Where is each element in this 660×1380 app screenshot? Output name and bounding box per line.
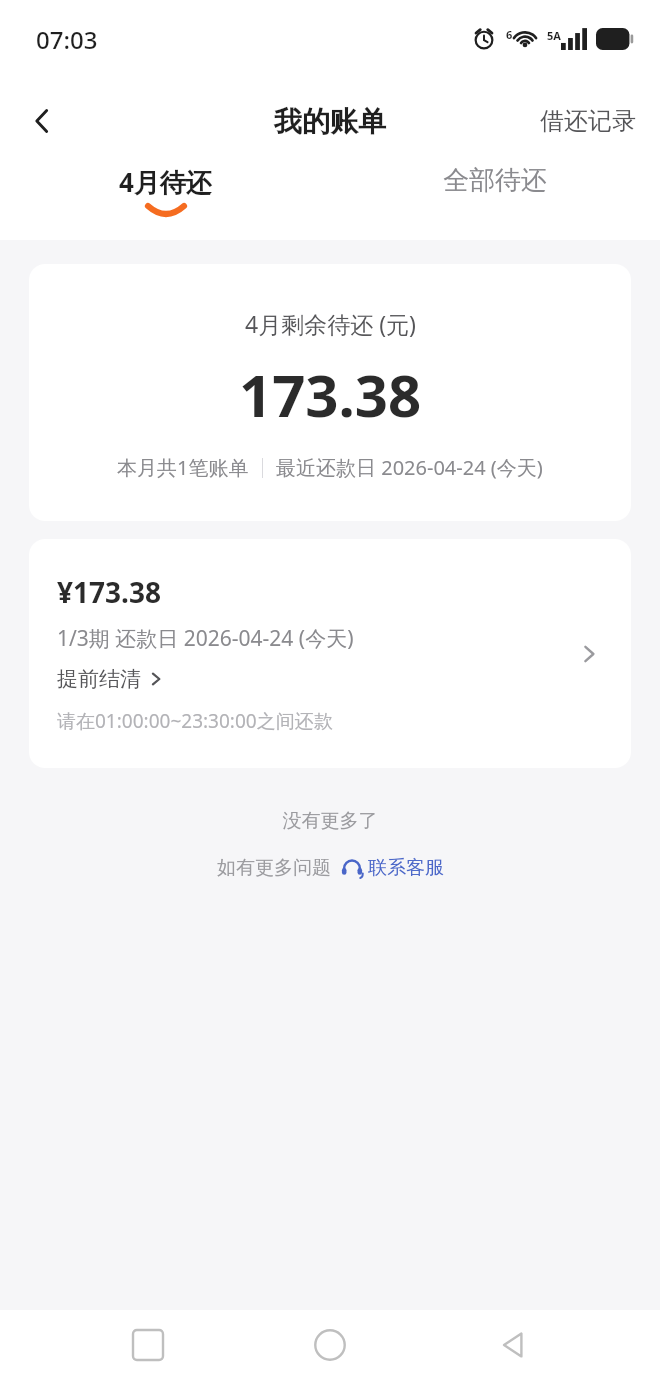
button[interactable]: 借还记录 bbox=[516, 94, 660, 148]
staticText: ¥173.38 bbox=[57, 573, 161, 611]
button[interactable]: Back bbox=[10, 89, 74, 153]
staticText: 1/3期 还款日 2026-04-24 (今天) bbox=[57, 624, 354, 653]
button[interactable]: 提前结清 bbox=[57, 666, 163, 692]
staticText: 没有更多了 bbox=[0, 809, 660, 833]
staticText: 联系客服 bbox=[368, 856, 444, 880]
staticText: 如有更多问题 bbox=[217, 856, 331, 880]
button[interactable]: ¥173.38 bbox=[29, 539, 631, 768]
staticText: 全部待还 bbox=[443, 164, 547, 197]
staticText: 5A bbox=[547, 28, 561, 43]
button[interactable]: 全部待还 bbox=[330, 164, 660, 240]
button[interactable]: 联系客服 bbox=[340, 856, 444, 880]
staticText: 我的账单 bbox=[274, 104, 386, 139]
button[interactable]: 4月待还 bbox=[0, 164, 330, 240]
staticText: 本月共1笔账单 bbox=[117, 454, 249, 481]
staticText: 4月待还 bbox=[119, 164, 212, 200]
button[interactable]: 4月剩余待还 (元) bbox=[29, 264, 631, 521]
staticText: 最近还款日 2026-04-24 (今天) bbox=[276, 454, 543, 481]
staticText: 提前结清 bbox=[57, 666, 141, 692]
staticText: 借还记录 bbox=[540, 106, 636, 136]
button[interactable]: Details bbox=[571, 636, 607, 672]
staticText: 6 bbox=[506, 27, 513, 42]
button[interactable]: Home bbox=[295, 1310, 365, 1380]
staticText: 4月剩余待还 (元) bbox=[245, 308, 416, 339]
staticText: 173.38 bbox=[239, 355, 422, 434]
staticText: 请在01:00:00~23:30:00之间还款 bbox=[57, 708, 333, 734]
button[interactable]: Recents bbox=[113, 1310, 183, 1380]
staticText: 07:03 bbox=[36, 23, 98, 56]
button[interactable]: Back bbox=[478, 1310, 548, 1380]
